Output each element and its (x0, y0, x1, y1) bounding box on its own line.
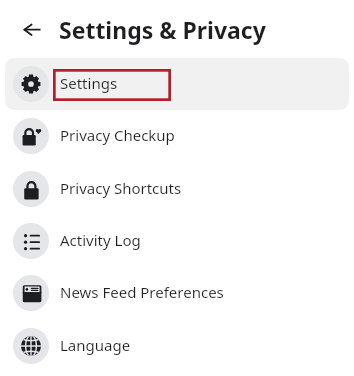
staticText: Privacy Shortcuts (60, 178, 182, 198)
button[interactable]: Language (5, 320, 349, 372)
button[interactable]: Back (12, 12, 48, 48)
staticText: Privacy Checkup (60, 125, 175, 145)
staticText: Activity Log (60, 230, 141, 250)
staticText: Settings & Privacy (59, 14, 266, 45)
button[interactable]: Privacy Shortcuts (5, 163, 349, 215)
staticText: Language (60, 335, 131, 355)
staticText: Settings (60, 73, 118, 93)
button[interactable]: Settings (5, 58, 349, 110)
staticText: News Feed Preferences (60, 282, 224, 302)
button[interactable]: News Feed Preferences (5, 267, 349, 319)
button[interactable]: Activity Log (5, 215, 349, 267)
button[interactable]: Privacy Checkup (5, 110, 349, 162)
